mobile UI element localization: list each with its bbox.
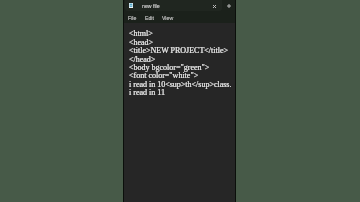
staticText: <body bgcolor="green"> bbox=[129, 63, 210, 72]
button[interactable]: New tab bbox=[225, 2, 233, 10]
staticText: File bbox=[128, 15, 137, 21]
button[interactable]: File bbox=[127, 14, 138, 22]
staticText: <html> bbox=[129, 29, 153, 38]
staticText: new file bbox=[142, 3, 160, 9]
button[interactable] bbox=[125, 0, 222, 11]
button[interactable]: Edit bbox=[144, 14, 155, 22]
staticText: i read in 11 bbox=[129, 88, 165, 97]
button[interactable]: View bbox=[161, 14, 175, 22]
staticText: Edit bbox=[145, 15, 154, 21]
staticText: <font color="white"> bbox=[129, 71, 199, 80]
button[interactable]: Close tab bbox=[210, 2, 218, 10]
staticText: i read in 10<sup>th</sup>class. bbox=[129, 80, 232, 89]
staticText: <head> bbox=[129, 38, 154, 47]
staticText: </head> bbox=[129, 55, 156, 64]
staticText: View bbox=[162, 15, 174, 21]
staticText: <title>NEW PROJECT</title> bbox=[129, 46, 229, 55]
